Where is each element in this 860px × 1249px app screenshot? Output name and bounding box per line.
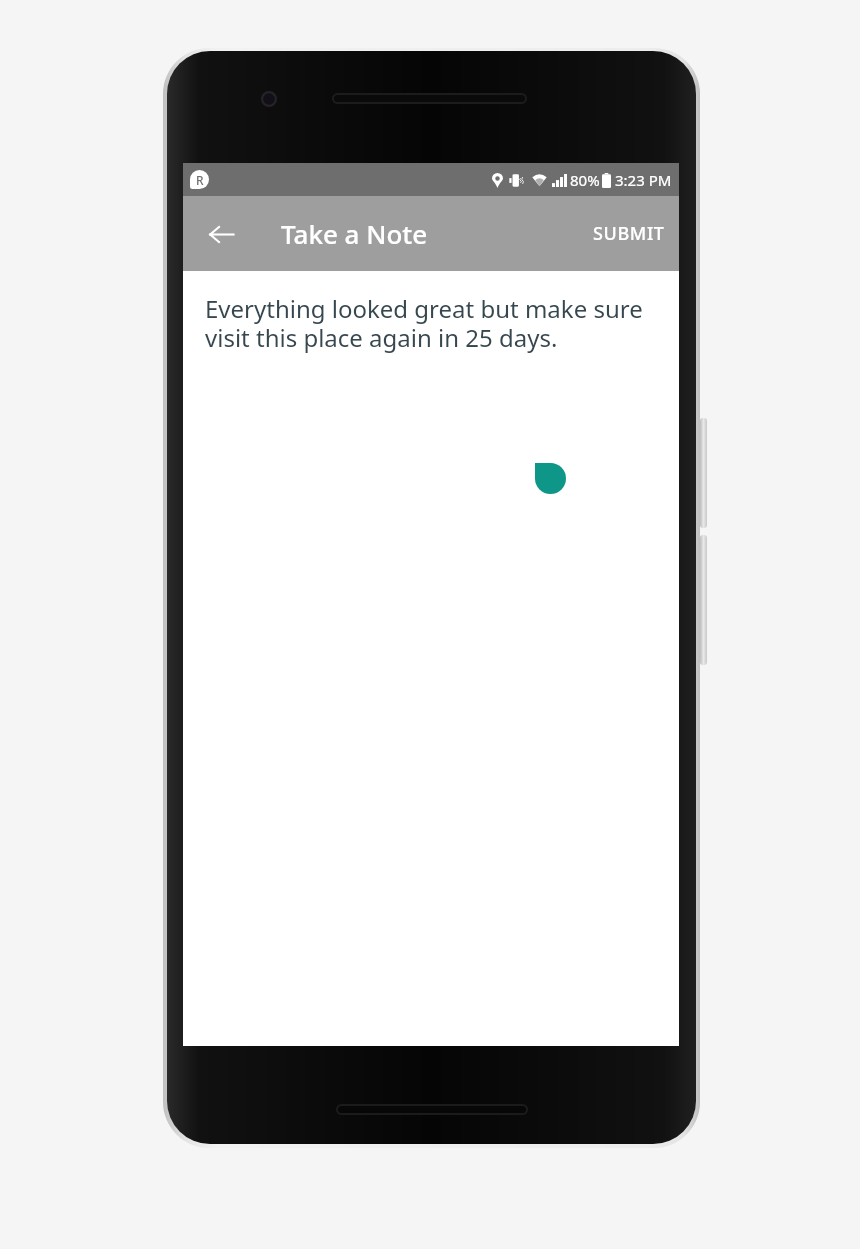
button[interactable]: Everything looked great but make sure vi… xyxy=(183,271,679,1046)
staticText: 80% xyxy=(570,170,600,190)
staticText: Take a Note xyxy=(281,216,428,251)
staticText: 3:23 PM xyxy=(615,170,672,190)
button[interactable]: SUBMIT xyxy=(579,207,679,260)
button[interactable]: Back xyxy=(197,210,245,258)
other: Text cursor handle xyxy=(535,463,566,494)
staticText: R xyxy=(196,172,204,188)
staticText: SUBMIT xyxy=(593,221,665,246)
staticText: Everything looked great but make sure vi… xyxy=(205,292,649,354)
